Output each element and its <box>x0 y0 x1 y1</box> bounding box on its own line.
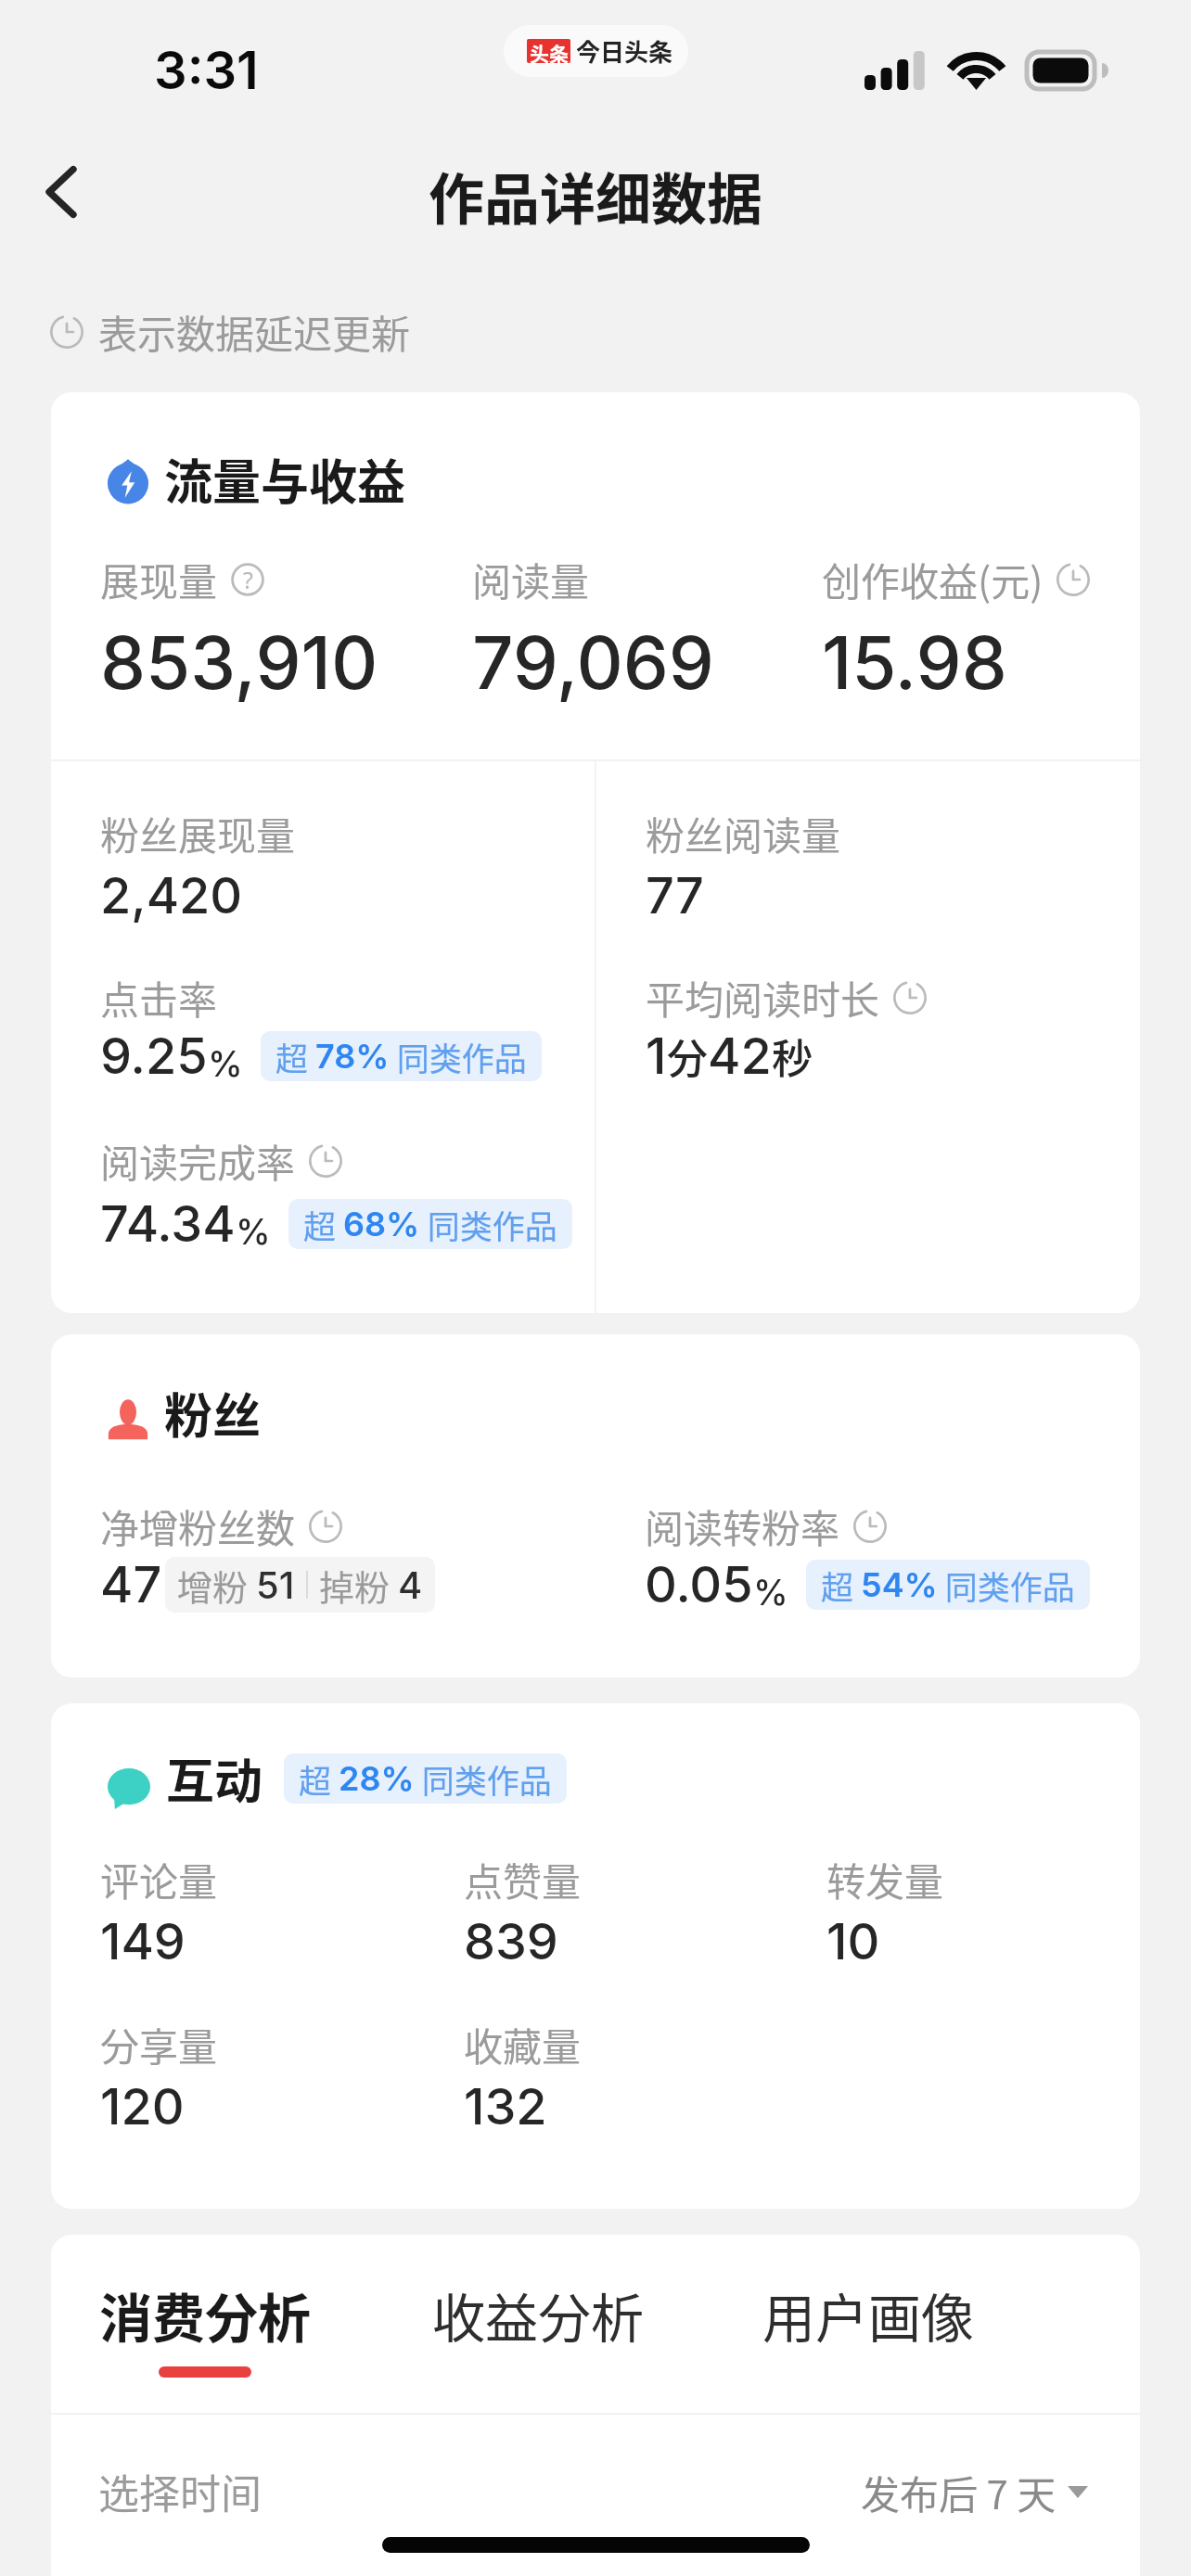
staticText: 28% <box>339 1758 415 1799</box>
staticText: % <box>753 1571 788 1613</box>
staticText: 创作收益(元) <box>822 551 1044 607</box>
button[interactable]: 用户画像 <box>762 2276 974 2389</box>
staticText: 互动 <box>166 1743 263 1813</box>
staticText: 超 <box>299 1755 339 1803</box>
staticText: 149 <box>100 1911 186 1971</box>
staticText: 点击率 <box>100 969 218 1026</box>
staticText: 2,420 <box>100 865 243 925</box>
staticText: 超 <box>303 1201 343 1248</box>
staticText: 42 <box>708 1026 772 1086</box>
staticText: 9.25 <box>100 1026 208 1086</box>
button[interactable]: 收益分析 <box>432 2276 644 2389</box>
staticText: 流量与收益 <box>164 444 406 514</box>
staticText: 粉丝 <box>164 1378 262 1447</box>
staticText: 47 <box>100 1554 162 1614</box>
staticText: 同类作品 <box>938 1562 1075 1609</box>
staticText: 853,910 <box>100 618 378 706</box>
staticText: 点赞量 <box>464 1851 582 1907</box>
staticText: ? <box>243 564 253 595</box>
staticText: 839 <box>464 1911 558 1971</box>
staticText: 评论量 <box>100 1851 218 1907</box>
staticText: 掉粉 <box>319 1560 398 1611</box>
button[interactable]: 发布后 7 天 <box>861 2464 1088 2520</box>
staticText: 51 <box>256 1562 295 1607</box>
staticText: 阅读转粉率 <box>645 1498 840 1554</box>
staticText: 超 <box>275 1033 315 1080</box>
staticText: 表示数据延迟更新 <box>98 303 411 360</box>
staticText: 平均阅读时长 <box>646 969 880 1026</box>
staticText: 0.05 <box>645 1554 753 1614</box>
staticText: 78% <box>315 1036 390 1077</box>
staticText: 收藏量 <box>464 2016 582 2072</box>
staticText: 展现量 <box>100 551 218 607</box>
staticText: 头条 <box>530 39 569 63</box>
staticText: 同类作品 <box>390 1033 527 1080</box>
staticText: 今日头条 <box>576 33 673 69</box>
staticText: 分 <box>667 1027 708 1086</box>
staticText: 粉丝阅读量 <box>646 805 841 861</box>
staticText: 1 <box>646 1026 667 1086</box>
staticText: 发布后 7 天 <box>861 2464 1057 2520</box>
staticText: 120 <box>100 2076 185 2136</box>
staticText: % <box>208 1042 243 1085</box>
button[interactable]: Back <box>15 146 108 238</box>
staticText: 77 <box>646 865 704 925</box>
staticText: 消费分析 <box>99 2276 311 2353</box>
staticText: 分享量 <box>100 2016 218 2072</box>
staticText: 转发量 <box>826 1851 944 1907</box>
staticText: 阅读完成率 <box>100 1132 296 1189</box>
staticText: 超 <box>821 1562 861 1609</box>
staticText: 15.98 <box>822 618 1007 706</box>
staticText: 74.34 <box>100 1193 236 1254</box>
staticText: 阅读量 <box>472 551 590 607</box>
staticText: 秒 <box>772 1027 813 1086</box>
button[interactable]: 消费分析 <box>99 2276 311 2389</box>
staticText: 10 <box>826 1911 880 1971</box>
staticText: % <box>236 1210 271 1253</box>
staticText: 79,069 <box>472 618 715 706</box>
staticText: 3:31 <box>154 39 259 102</box>
staticText: 作品详细数据 <box>429 155 762 236</box>
staticText: 同类作品 <box>420 1201 557 1248</box>
staticText: 54% <box>861 1564 938 1605</box>
staticText: 选择时间 <box>98 2462 262 2521</box>
staticText: 净增粉丝数 <box>100 1498 296 1554</box>
staticText: 4 <box>398 1562 423 1607</box>
staticText: 收益分析 <box>432 2276 644 2353</box>
staticText: 68% <box>343 1204 420 1244</box>
staticText: 用户画像 <box>762 2276 974 2353</box>
staticText: 粉丝展现量 <box>100 805 296 861</box>
staticText: 增粉 <box>177 1560 256 1611</box>
staticText: 132 <box>464 2076 547 2136</box>
staticText: 同类作品 <box>415 1755 552 1803</box>
